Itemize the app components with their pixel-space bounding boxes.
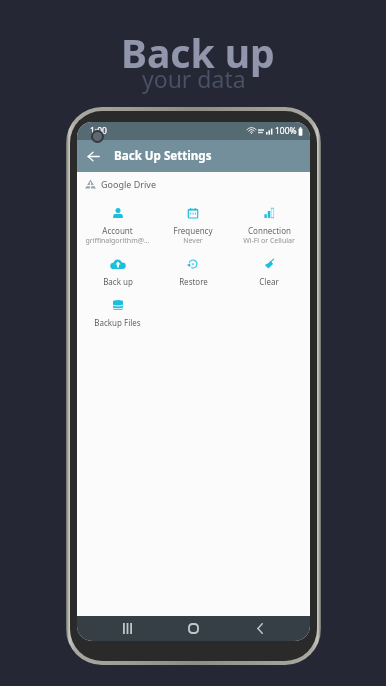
staticText: your data	[142, 63, 246, 94]
staticText: Connection	[248, 225, 291, 236]
button[interactable]: Back	[77, 140, 109, 172]
button[interactable]: Clear	[231, 257, 307, 289]
button[interactable]: Restore	[155, 257, 231, 289]
button[interactable]: Frequency	[155, 206, 231, 248]
button[interactable]: Recents	[115, 616, 140, 641]
staticText: Account	[102, 225, 133, 236]
button[interactable]: Backup Files	[80, 298, 155, 330]
staticText: Never	[183, 236, 203, 246]
staticText: griffinalgorithm@...	[85, 236, 150, 246]
staticText: Google Drive	[101, 178, 156, 190]
staticText: 100%	[275, 125, 297, 137]
staticText: Wi-Fi or Cellular	[243, 236, 295, 246]
staticText: Back up	[103, 276, 133, 287]
staticText: Frequency	[173, 225, 213, 236]
staticText: Back up	[121, 26, 275, 79]
staticText: 1:00	[90, 125, 107, 137]
button[interactable]: Home	[181, 616, 206, 641]
button[interactable]: Account	[80, 206, 155, 248]
button[interactable]: Back up	[80, 257, 155, 289]
staticText: Restore	[179, 276, 208, 287]
staticText: Clear	[259, 276, 279, 287]
staticText: Back Up Settings	[114, 148, 212, 164]
button[interactable]: Connection	[231, 206, 307, 248]
staticText: Backup Files	[94, 317, 141, 328]
button[interactable]: Back	[247, 616, 272, 641]
